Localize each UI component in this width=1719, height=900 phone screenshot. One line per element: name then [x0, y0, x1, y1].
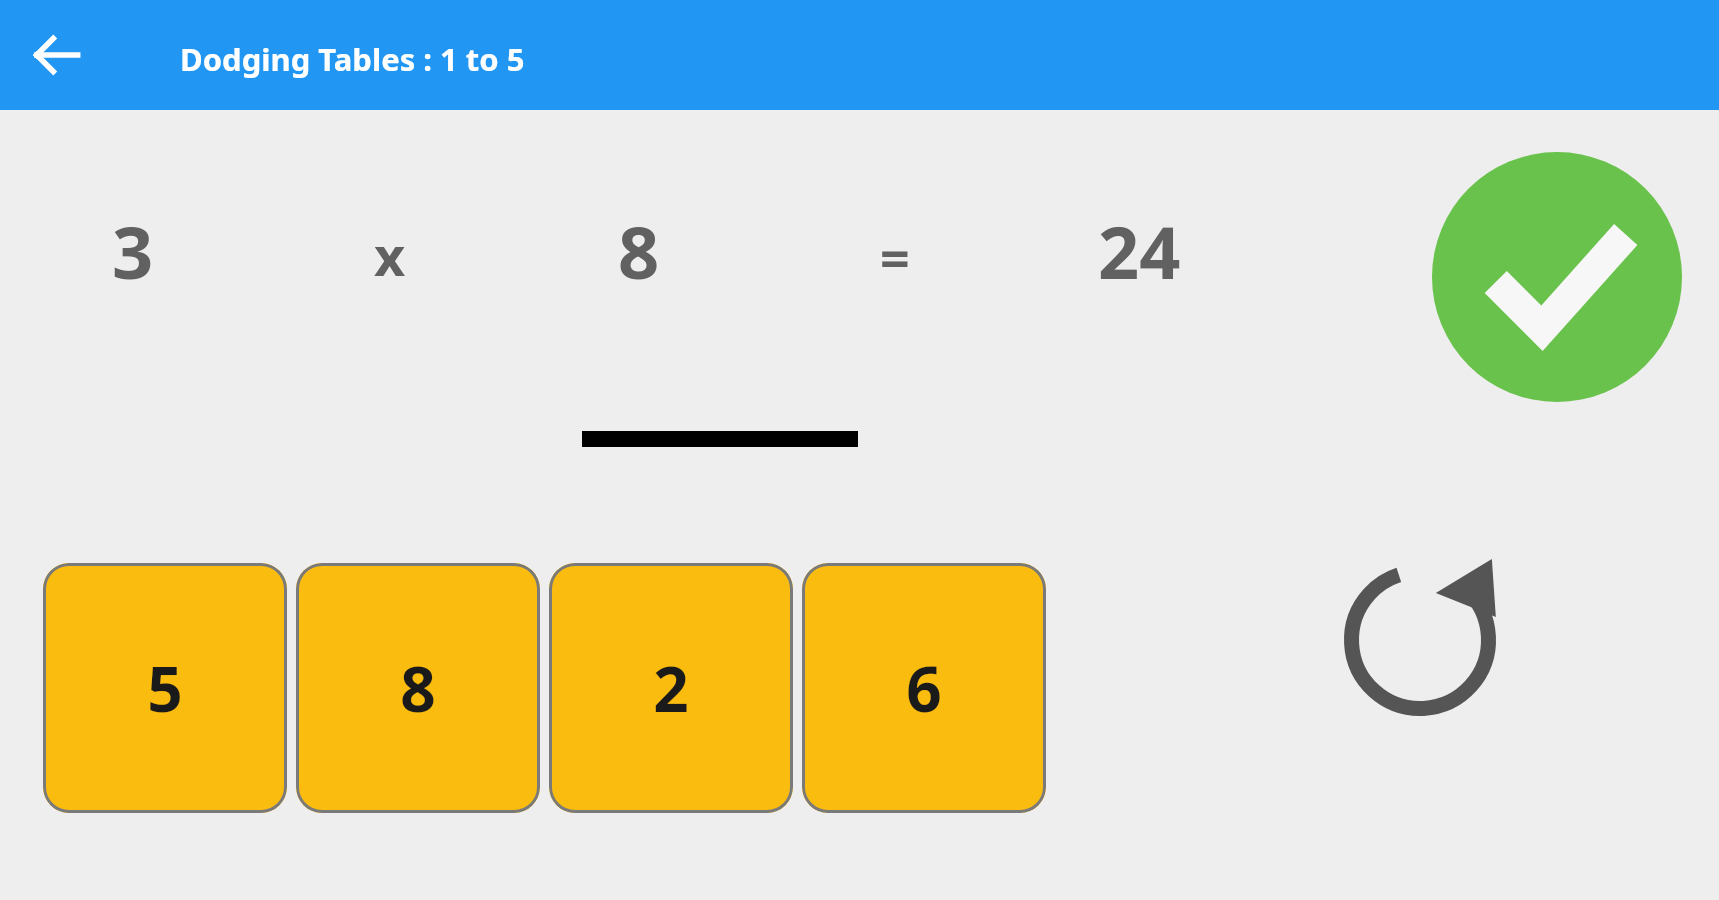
button[interactable]: Correct [1432, 152, 1682, 402]
staticText: x [374, 218, 406, 292]
button[interactable]: Refresh [1330, 550, 1510, 730]
button[interactable]: 8 [296, 563, 540, 813]
button[interactable]: Back [22, 20, 92, 90]
button[interactable]: 5 [43, 563, 287, 813]
staticText: = [880, 222, 910, 293]
staticText: 24 [1098, 202, 1181, 300]
staticText: 2 [653, 646, 689, 730]
button[interactable]: 2 [549, 563, 793, 813]
button[interactable]: 6 [802, 563, 1046, 813]
staticText: 8 [618, 202, 660, 300]
staticText: 5 [147, 646, 183, 730]
staticText: Dodging Tables : 1 to 5 [180, 38, 525, 80]
staticText: 6 [906, 646, 942, 730]
staticText: 8 [400, 646, 436, 730]
staticText: 3 [112, 202, 154, 300]
